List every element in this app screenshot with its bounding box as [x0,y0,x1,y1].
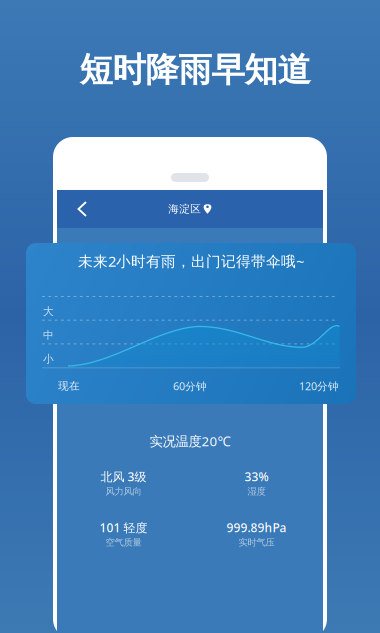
staticText: 中 [43,329,54,342]
staticText: 短时降雨早知道 [79,49,310,90]
staticText: 北风 3级 [100,468,146,484]
staticText: 湿度 [247,486,265,497]
staticText: 现在 [58,379,80,392]
button[interactable]: Back [65,191,107,227]
staticText: 海淀区 [168,202,201,215]
staticText: 实况温度20℃ [149,432,230,450]
staticText: 大 [43,305,54,318]
staticText: 60分钟 [173,379,207,393]
staticText: 120分钟 [299,379,339,393]
staticText: 实时气压 [238,537,274,548]
staticText: 999.89hPa [226,519,286,535]
staticText: 未来2小时有雨，出门记得带伞哦~ [78,251,304,271]
staticText: 空气质量 [105,537,141,548]
staticText: 风力风向 [105,486,141,497]
staticText: 101 轻度 [99,519,147,535]
staticText: 小 [43,352,54,365]
staticText: 33% [244,468,268,484]
